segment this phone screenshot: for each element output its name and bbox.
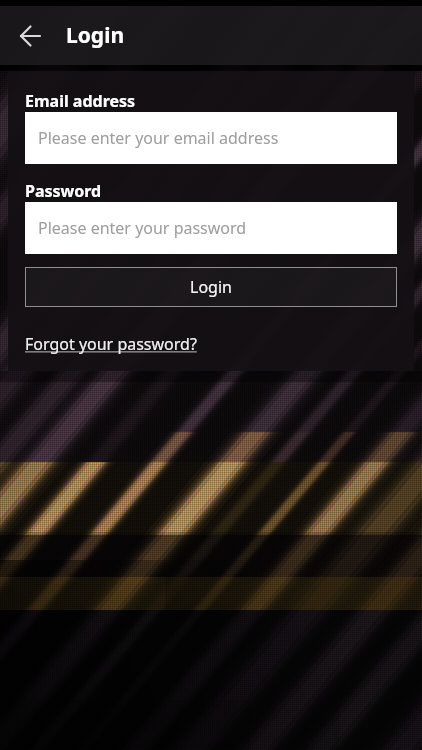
button[interactable]: Forgot your password? xyxy=(25,333,197,355)
button[interactable] xyxy=(0,6,60,65)
staticText: Email address xyxy=(25,90,136,112)
button[interactable]: Please enter your email address xyxy=(25,112,397,164)
staticText: Login xyxy=(190,276,232,298)
staticText: Please enter your email address xyxy=(38,127,279,149)
staticText: Password xyxy=(25,180,102,202)
staticText: Please enter your password xyxy=(38,217,247,239)
button[interactable]: Please enter your password xyxy=(25,202,397,254)
button[interactable]: Login xyxy=(25,267,397,307)
staticText: Login xyxy=(66,21,125,50)
